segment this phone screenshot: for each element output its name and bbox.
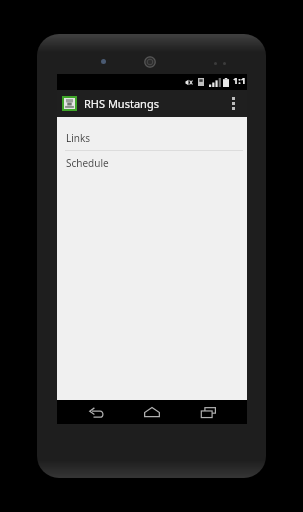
staticText: 1:15 <box>233 74 247 90</box>
staticText: Links <box>66 131 91 145</box>
button[interactable]: Home <box>135 400 169 424</box>
staticText: Schedule <box>66 156 109 170</box>
button[interactable]: Links <box>57 126 247 150</box>
button[interactable]: Schedule <box>57 151 247 175</box>
button[interactable]: More options <box>223 90 243 117</box>
button[interactable]: Recent apps <box>191 400 225 424</box>
staticText: RHS Mustangs <box>84 96 159 111</box>
button[interactable]: Back <box>79 400 113 424</box>
